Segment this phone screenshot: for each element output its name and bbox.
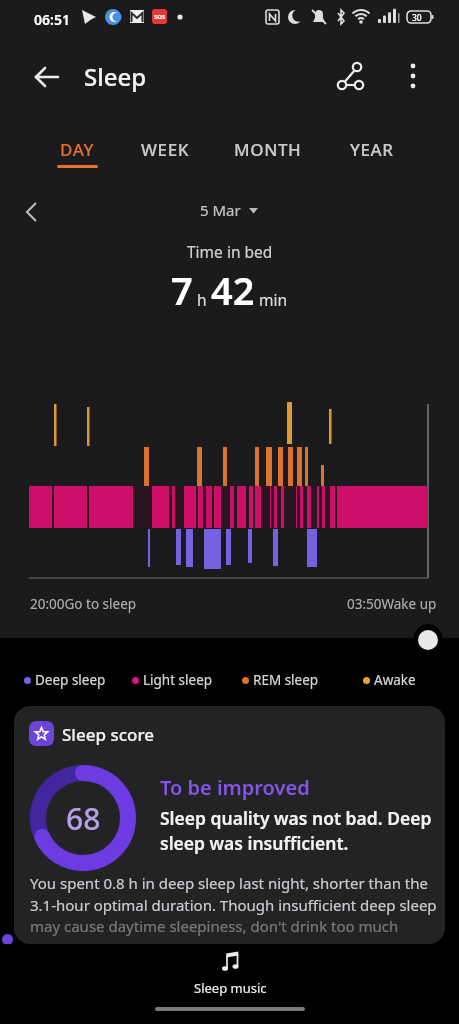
staticText: 20:00Go to sleep xyxy=(30,595,137,613)
button[interactable]: YEAR xyxy=(340,138,404,168)
button[interactable]: 5 Mar xyxy=(0,200,459,220)
staticText: Sleep xyxy=(84,60,147,93)
button[interactable] xyxy=(396,57,430,97)
button[interactable]: WEEK xyxy=(130,138,200,168)
staticText: h xyxy=(193,289,211,310)
staticText: 5 Mar xyxy=(200,200,241,220)
staticText: Light sleep xyxy=(143,671,213,689)
staticText: YEAR xyxy=(350,138,394,161)
button[interactable]: Sleep music xyxy=(170,946,290,1002)
staticText: REM sleep xyxy=(253,671,319,689)
button[interactable]: Sleep score xyxy=(14,706,445,944)
button[interactable] xyxy=(26,56,68,98)
button[interactable]: MONTH xyxy=(226,138,310,168)
staticText: Awake xyxy=(374,671,416,689)
staticText: Sleep music xyxy=(194,979,267,997)
staticText: 03:50Wake up xyxy=(347,595,437,613)
staticText: may cause daytime sleepiness, don't drin… xyxy=(30,916,399,936)
staticText: DAY xyxy=(60,138,94,161)
staticText: WEEK xyxy=(141,138,190,161)
staticText: 30 xyxy=(412,12,422,24)
staticText: Time in bed xyxy=(187,241,273,262)
staticText: SOS xyxy=(154,13,166,21)
button[interactable] xyxy=(332,57,372,97)
button[interactable]: Deep sleep xyxy=(24,671,106,689)
staticText: 68 xyxy=(66,798,101,839)
staticText: Deep sleep xyxy=(35,671,106,689)
button[interactable]: Awake xyxy=(363,671,416,689)
staticText: 42 xyxy=(211,264,255,316)
staticText: You spent 0.8 h in deep sleep last night… xyxy=(30,873,437,915)
staticText: Sleep score xyxy=(62,723,155,746)
staticText: MONTH xyxy=(234,138,302,161)
button[interactable] xyxy=(14,196,50,228)
staticText: Sleep quality was not bad. Deep sleep wa… xyxy=(160,806,432,855)
staticText: To be improved xyxy=(160,774,310,801)
button[interactable]: DAY xyxy=(48,132,106,172)
button[interactable]: Light sleep xyxy=(132,671,213,689)
button[interactable]: REM sleep xyxy=(242,671,319,689)
staticText: 7 xyxy=(171,264,193,316)
staticText: 06:51 xyxy=(34,10,70,29)
staticText: min xyxy=(255,289,288,310)
